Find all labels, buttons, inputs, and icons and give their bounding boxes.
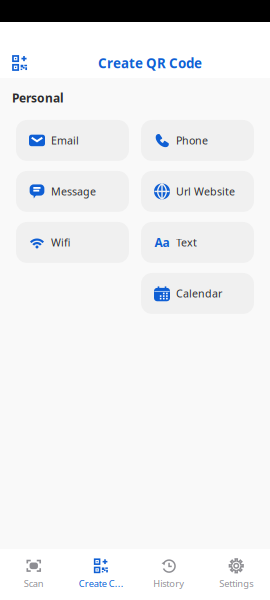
- staticText: Aa: [154, 234, 169, 250]
- button[interactable]: Create C...: [67, 547, 135, 600]
- staticText: Phone: [176, 133, 208, 148]
- staticText: Email: [51, 133, 79, 148]
- staticText: Personal: [12, 90, 64, 106]
- staticText: Scan: [24, 577, 44, 590]
- button[interactable]: Email: [16, 120, 129, 161]
- button[interactable]: Phone: [141, 120, 254, 161]
- button[interactable]: Url Website: [141, 171, 254, 212]
- staticText: Wifi: [51, 235, 70, 250]
- button[interactable]: New QR code: [0, 48, 30, 78]
- staticText: Create QR Code: [98, 54, 202, 72]
- button[interactable]: Message: [16, 171, 129, 212]
- button[interactable]: History: [135, 547, 202, 600]
- staticText: Url Website: [176, 184, 235, 199]
- button[interactable]: Scan: [0, 547, 67, 600]
- button[interactable]: Calendar: [141, 273, 254, 314]
- staticText: Calendar: [176, 286, 222, 301]
- button[interactable]: Wifi: [16, 222, 129, 263]
- staticText: Create C...: [79, 577, 124, 590]
- staticText: Message: [51, 184, 96, 199]
- staticText: Settings: [219, 577, 253, 590]
- staticText: Text: [176, 235, 197, 250]
- staticText: History: [153, 577, 184, 590]
- button[interactable]: Settings: [202, 547, 270, 600]
- button[interactable]: Aa: [141, 222, 254, 263]
